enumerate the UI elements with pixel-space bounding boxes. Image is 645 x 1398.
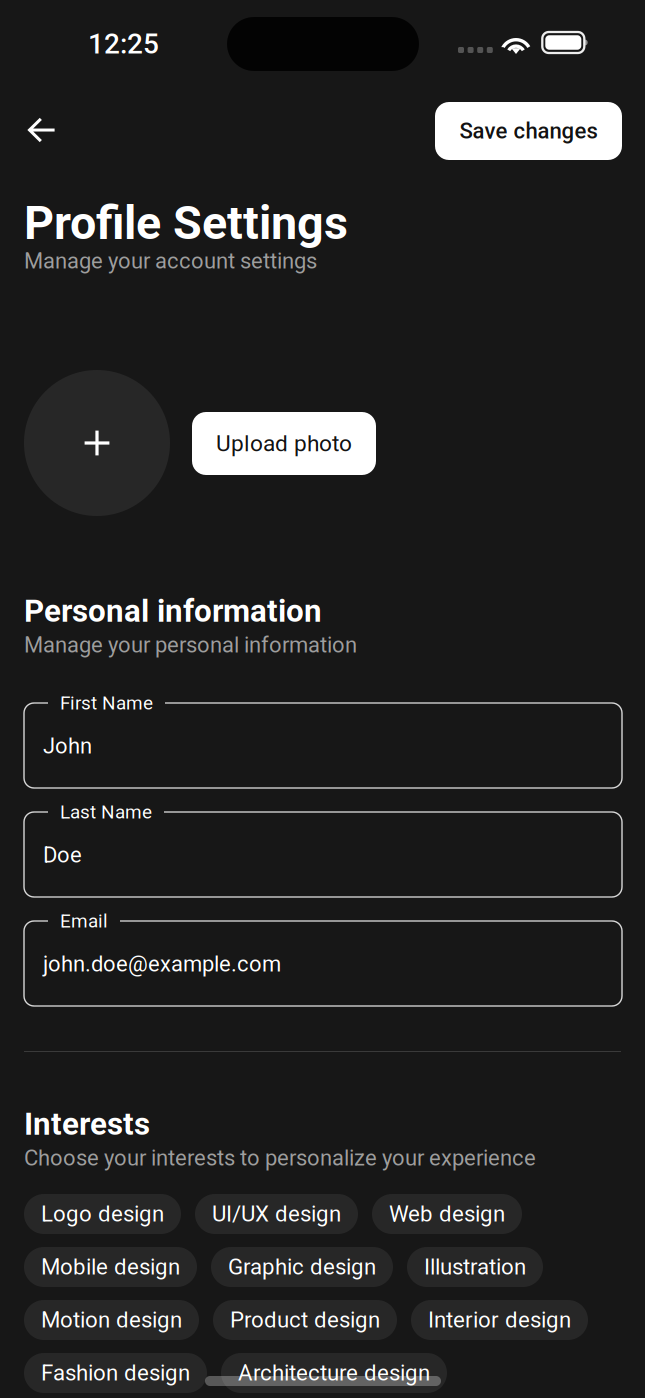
staticText: Architecture design xyxy=(238,1360,430,1386)
staticText: Last Name xyxy=(60,801,152,823)
staticText: Interests xyxy=(24,1106,150,1142)
staticText: Save changes xyxy=(459,118,597,144)
button[interactable]: Graphic design xyxy=(211,1247,393,1287)
staticText: Illustration xyxy=(424,1254,526,1280)
staticText: Logo design xyxy=(41,1201,164,1227)
button[interactable]: Back xyxy=(12,100,72,160)
staticText: Product design xyxy=(230,1307,380,1333)
staticText: Email xyxy=(60,910,108,932)
staticText: Mobile design xyxy=(41,1254,180,1280)
staticText: UI/UX design xyxy=(212,1201,341,1227)
button[interactable]: Web design xyxy=(372,1194,522,1234)
staticText: Web design xyxy=(389,1201,505,1227)
staticText: Upload photo xyxy=(216,430,352,457)
button[interactable]: Architecture design xyxy=(221,1353,447,1393)
staticText: Profile Settings xyxy=(24,196,348,250)
button[interactable]: Product design xyxy=(213,1300,397,1340)
staticText: Choose your interests to personalize you… xyxy=(24,1145,536,1171)
staticText: Interior design xyxy=(428,1307,571,1333)
staticText: Fashion design xyxy=(41,1360,190,1386)
button[interactable]: UI/UX design xyxy=(195,1194,358,1234)
button[interactable]: Mobile design xyxy=(24,1247,197,1287)
button[interactable]: Interior design xyxy=(411,1300,588,1340)
staticText: Manage your personal information xyxy=(24,632,357,658)
staticText: 12:25 xyxy=(88,28,159,60)
staticText: John xyxy=(43,733,92,759)
button[interactable]: Fashion design xyxy=(24,1353,207,1393)
button[interactable]: Motion design xyxy=(24,1300,199,1340)
button[interactable]: Save changes xyxy=(435,102,622,160)
staticText: Manage your account settings xyxy=(24,248,317,274)
staticText: Doe xyxy=(43,842,82,868)
staticText: Motion design xyxy=(41,1307,182,1333)
button[interactable]: Illustration xyxy=(407,1247,543,1287)
button[interactable]: Upload photo xyxy=(192,412,376,475)
staticText: Graphic design xyxy=(228,1254,376,1280)
button[interactable]: Logo design xyxy=(24,1194,181,1234)
staticText: First Name xyxy=(60,692,153,714)
button[interactable]: Add photo xyxy=(24,370,170,516)
staticText: john.doe@example.com xyxy=(43,951,281,977)
staticText: Personal information xyxy=(24,593,322,629)
